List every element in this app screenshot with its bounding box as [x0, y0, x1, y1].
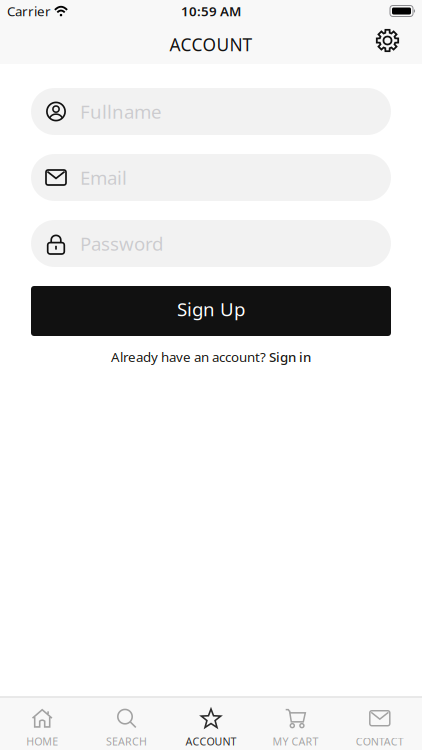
button[interactable]: SEARCH: [84, 708, 169, 748]
button[interactable]: MY CART: [253, 708, 338, 748]
staticText: Email: [80, 165, 127, 190]
staticText: Carrier: [7, 2, 51, 20]
staticText: ACCOUNT: [185, 734, 236, 748]
button[interactable]: HOME: [0, 708, 84, 748]
staticText: SEARCH: [106, 734, 147, 748]
button[interactable]: Password: [31, 220, 391, 267]
staticText: Password: [80, 231, 163, 256]
staticText: Sign Up: [177, 297, 245, 321]
button[interactable]: Already have an account? Sign in: [111, 348, 311, 366]
staticText: ACCOUNT: [169, 33, 252, 56]
button[interactable]: Email: [31, 154, 391, 201]
button[interactable]: CONTACT: [338, 708, 422, 748]
staticText: HOME: [26, 734, 58, 748]
button[interactable]: Fullname: [31, 88, 391, 135]
staticText: MY CART: [272, 734, 318, 748]
button[interactable]: ACCOUNT: [169, 708, 253, 748]
button[interactable]: Sign Up: [31, 286, 391, 336]
staticText: 10:59 AM: [181, 2, 241, 20]
button[interactable]: Settings: [376, 29, 422, 57]
staticText: Fullname: [80, 99, 162, 124]
staticText: CONTACT: [356, 734, 404, 748]
staticText: Already have an account? Sign in: [111, 348, 311, 366]
